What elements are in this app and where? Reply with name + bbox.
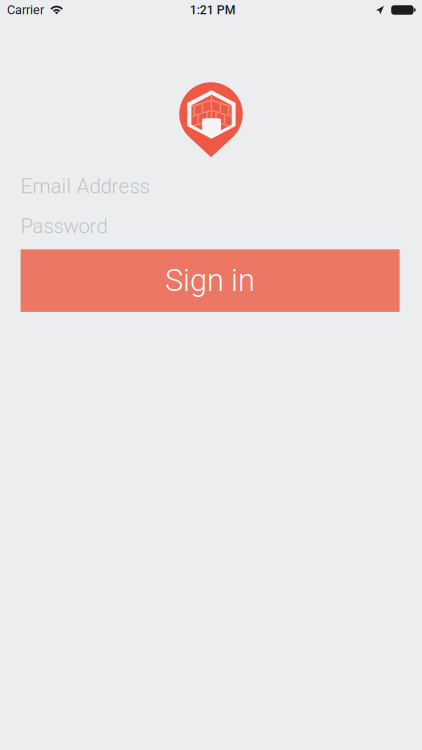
button[interactable]: Sign in (21, 249, 400, 312)
staticText: Sign in (165, 263, 255, 298)
staticText: Carrier (7, 3, 44, 17)
staticText: 1:21 PM (190, 3, 236, 17)
button[interactable]: Email Address (21, 166, 400, 206)
staticText: Password (21, 214, 108, 238)
staticText: Email Address (21, 174, 150, 198)
button[interactable]: Password (21, 206, 400, 246)
